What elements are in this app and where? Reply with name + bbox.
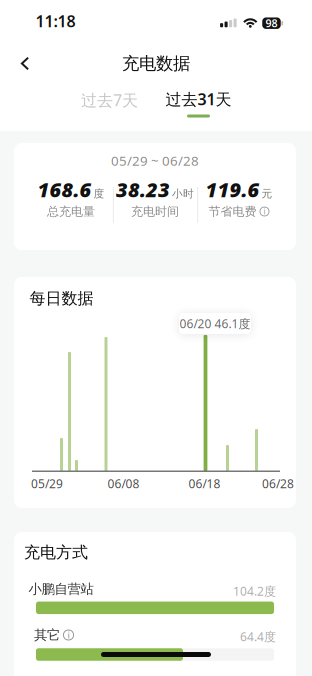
button[interactable]: 过去31天 (153, 89, 243, 123)
staticText: 充电方式 (24, 543, 88, 562)
button[interactable]: Back (3, 48, 47, 78)
staticText: 过去31天 (165, 88, 231, 110)
staticText: 每日数据 (29, 289, 93, 308)
staticText: 充电数据 (122, 53, 190, 74)
staticText: 168.6 (37, 176, 91, 203)
staticText: 节省电费 (208, 204, 256, 219)
button[interactable]: 过去7天 (69, 85, 149, 115)
staticText: 05/29 ~ 06/28 (111, 152, 199, 169)
staticText: 06/20 46.1度 (179, 315, 250, 331)
staticText: 104.2度 (233, 583, 276, 599)
staticText: 过去7天 (81, 89, 138, 111)
staticText: 38.23 (116, 176, 170, 203)
staticText: i (67, 629, 69, 641)
button[interactable]: 节省电费说明 (259, 206, 269, 216)
staticText: 64.4度 (240, 628, 276, 644)
staticText: 06/28 (262, 475, 294, 491)
staticText: 元 (261, 187, 272, 200)
staticText: 其它 (34, 627, 60, 643)
staticText: 小时 (172, 187, 194, 200)
staticText: 充电时间 (131, 204, 179, 219)
staticText: 度 (93, 187, 104, 200)
staticText: 05/29 (31, 475, 63, 491)
staticText: i (263, 206, 265, 217)
staticText: 119.6 (205, 176, 259, 203)
staticText: 06/08 (107, 475, 139, 491)
staticText: 06/18 (188, 475, 220, 491)
staticText: 总充电量 (47, 204, 95, 219)
staticText: 98 (265, 16, 277, 30)
button[interactable]: 其它说明 (63, 629, 74, 640)
staticText: 小鹏自营站 (28, 581, 93, 597)
staticText: 11:18 (35, 10, 75, 32)
